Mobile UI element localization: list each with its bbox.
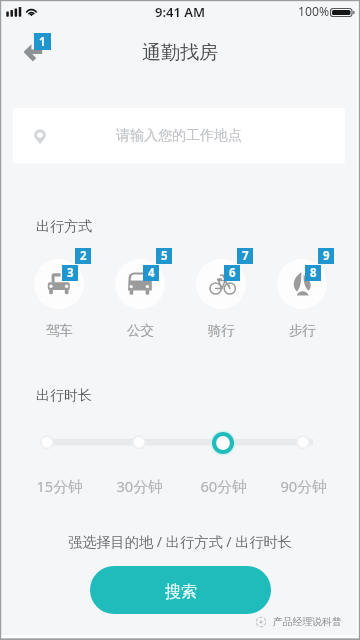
button[interactable]: 步行 xyxy=(266,256,338,340)
staticText: 15分钟 xyxy=(36,476,83,496)
staticText: 步行 xyxy=(289,322,316,339)
staticText: 7 xyxy=(242,248,249,264)
button[interactable]: 驾车 xyxy=(23,256,95,340)
button[interactable]: 15分钟 xyxy=(25,475,93,497)
button[interactable]: 公交 xyxy=(104,256,176,340)
staticText: 9:41 AM xyxy=(155,3,206,21)
button[interactable]: 搜索 xyxy=(90,566,271,614)
button[interactable]: Back xyxy=(16,38,50,68)
staticText: 出行方式 xyxy=(36,218,92,236)
button[interactable]: 请输入您的工作地点 xyxy=(13,108,345,163)
staticText: 2 xyxy=(80,248,87,264)
staticText: 3 xyxy=(67,265,74,281)
button[interactable]: 30分钟 xyxy=(105,475,173,497)
staticText: 通勤找房 xyxy=(142,41,218,65)
staticText: 6 xyxy=(229,265,236,281)
staticText: 1 xyxy=(39,34,46,50)
button[interactable]: 90分钟 xyxy=(269,475,337,497)
staticText: 90分钟 xyxy=(280,476,327,496)
staticText: 请输入您的工作地点 xyxy=(116,127,242,145)
staticText: 搜索 xyxy=(165,582,197,602)
staticText: 9 xyxy=(323,248,330,264)
staticText: 骑行 xyxy=(208,322,235,339)
button[interactable]: 骑行 xyxy=(185,256,257,340)
button[interactable]: 60分钟 xyxy=(189,475,257,497)
staticText: 强选择目的地 / 出行方式 / 出行时长 xyxy=(0,532,360,551)
staticText: 驾车 xyxy=(46,322,73,339)
staticText: 产品经理说科普 xyxy=(273,616,342,628)
staticText: 8 xyxy=(310,265,317,281)
staticText: 60分钟 xyxy=(200,476,247,496)
staticText: 5 xyxy=(161,248,168,264)
staticText: 出行时长 xyxy=(36,387,92,405)
staticText: 100% xyxy=(298,3,330,20)
staticText: 公交 xyxy=(127,322,154,339)
staticText: 4 xyxy=(148,265,155,281)
staticText: 30分钟 xyxy=(116,476,163,496)
